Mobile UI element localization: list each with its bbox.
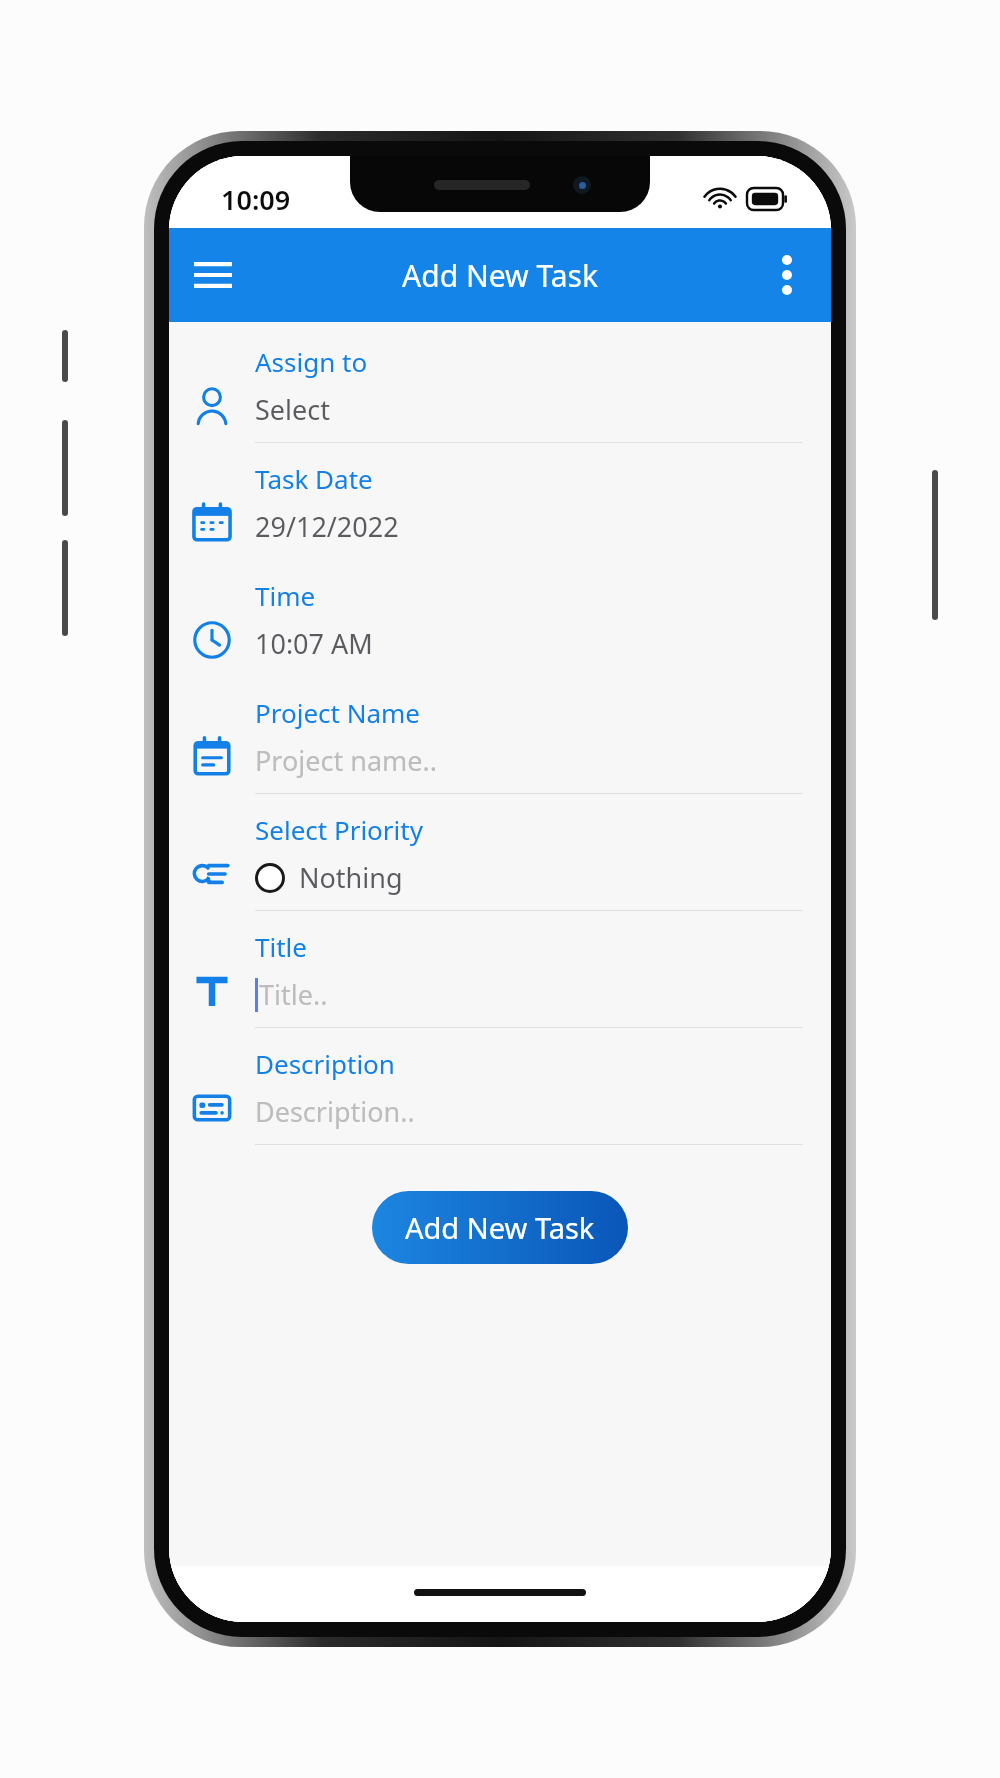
staticText: Project Name (255, 695, 420, 730)
button[interactable]: Assign to (169, 322, 831, 443)
staticText: Nothing (299, 859, 403, 896)
button[interactable]: Description (169, 1028, 831, 1145)
button[interactable]: Open navigation menu (185, 247, 241, 303)
button[interactable]: Time (169, 560, 831, 677)
staticText: Assign to (255, 344, 368, 379)
staticText: Project name.. (255, 742, 437, 779)
button[interactable]: Project Name (169, 677, 831, 794)
staticText: Add New Task (405, 1208, 595, 1247)
staticText: Select (255, 391, 330, 428)
staticText: 10:09 (221, 181, 291, 218)
staticText: Title.. (259, 976, 328, 1013)
staticText: Description.. (255, 1093, 415, 1130)
staticText: Title (255, 929, 307, 964)
staticText: 29/12/2022 (255, 508, 399, 545)
button[interactable]: More options (759, 247, 815, 303)
button[interactable]: Task Date (169, 443, 831, 560)
button[interactable]: Select Priority (169, 794, 831, 911)
staticText: 10:07 AM (255, 625, 373, 662)
staticText: Task Date (255, 461, 373, 496)
button[interactable]: Title (169, 911, 831, 1028)
staticText: Time (255, 578, 316, 613)
button[interactable]: Add New Task (372, 1191, 628, 1264)
staticText: Add New Task (402, 255, 598, 296)
staticText: Select Priority (255, 812, 423, 847)
staticText: Description (255, 1046, 395, 1081)
